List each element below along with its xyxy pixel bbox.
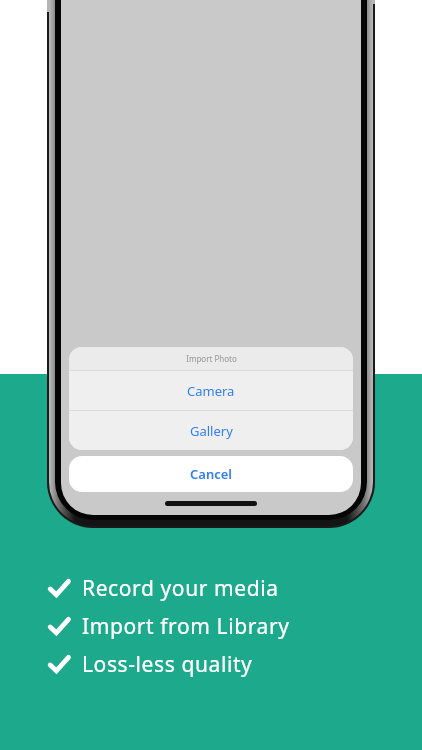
staticText: Record your media	[82, 574, 279, 603]
staticText: Cancel	[190, 465, 233, 483]
staticText: Camera	[187, 382, 235, 400]
button[interactable]: Gallery	[69, 411, 353, 450]
staticText: Gallery	[190, 422, 233, 440]
staticText: Import from Library	[82, 612, 290, 641]
button[interactable]: Cancel	[69, 456, 353, 492]
staticText: Import Photo	[186, 353, 237, 364]
button[interactable]: Camera	[69, 371, 353, 410]
staticText: Loss-less quality	[82, 650, 253, 679]
